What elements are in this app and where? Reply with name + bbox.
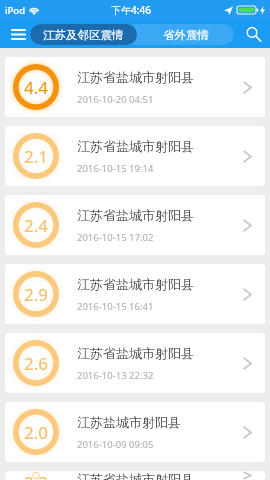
staticText: 4.4 <box>24 76 49 99</box>
staticText: 2.3 <box>24 471 49 480</box>
staticText: 2.6 <box>24 352 49 375</box>
button[interactable]: 省外震情 <box>137 24 234 45</box>
staticText: 2.0 <box>24 421 49 444</box>
button[interactable]: 2.3 <box>5 471 265 480</box>
button[interactable]: Menu <box>6 23 30 45</box>
button[interactable]: 2.1 <box>5 126 265 186</box>
staticText: 江苏及邻区震情 <box>43 28 124 42</box>
button[interactable]: 2.9 <box>5 264 265 324</box>
staticText: 2016-10-15 17:02 <box>77 231 154 244</box>
staticText: 下午4:46 <box>111 3 151 17</box>
button[interactable]: 江苏及邻区震情 <box>30 24 137 45</box>
button[interactable]: 2.4 <box>5 195 265 255</box>
staticText: 江苏省盐城市射阳县 <box>77 276 194 292</box>
staticText: 2016-10-13 22:32 <box>77 369 154 382</box>
staticText: 江苏省盐城市射阳县 <box>77 207 194 223</box>
button[interactable]: 2.6 <box>5 333 265 393</box>
staticText: 2016-10-15 19:14 <box>77 162 154 175</box>
staticText: 江苏省盐城市射阳县 <box>77 138 194 154</box>
staticText: iPod <box>5 4 26 17</box>
staticText: 2016-10-09 09:05 <box>77 438 154 451</box>
staticText: 2.1 <box>24 145 49 168</box>
staticText: 江苏省盐城市射阳县 <box>77 345 194 361</box>
staticText: 2016-10-20 04:51 <box>77 93 154 106</box>
staticText: 2.9 <box>24 283 49 306</box>
staticText: 2016-10-15 16:41 <box>77 300 154 313</box>
staticText: 江苏省盐城市射阳县 <box>77 471 194 480</box>
button[interactable]: 2.0 <box>5 402 265 462</box>
staticText: 江苏省盐城市射阳县 <box>77 69 194 85</box>
button[interactable]: Search <box>241 22 265 46</box>
button[interactable]: 4.4 <box>5 57 265 117</box>
staticText: 江苏盐城市射阳县 <box>77 414 181 430</box>
staticText: 省外震情 <box>163 28 209 42</box>
staticText: 2.4 <box>24 214 49 237</box>
